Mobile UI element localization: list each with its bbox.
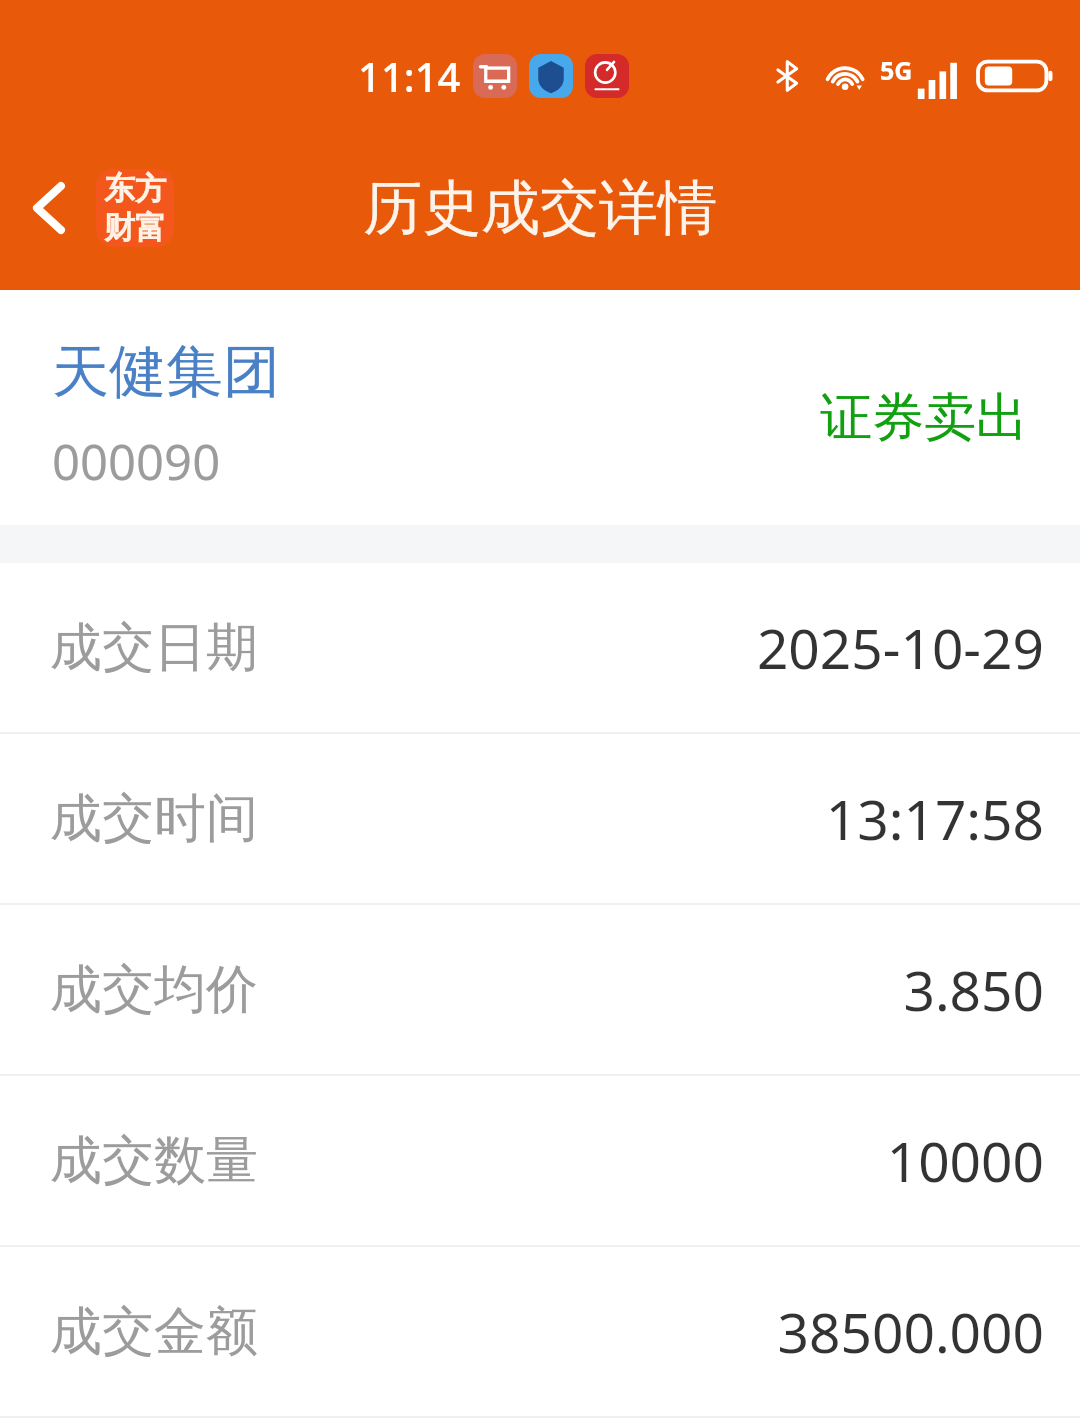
button[interactable]: Back [6, 165, 92, 251]
button[interactable]: 成交时间 [0, 734, 1080, 903]
staticText: 证券卖出 [820, 385, 1028, 451]
staticText: 成交金额 [50, 1299, 258, 1365]
staticText: 历史成交详情 [363, 171, 717, 245]
button[interactable]: 天健集团 [0, 290, 1080, 525]
staticText: 000090 [52, 428, 221, 495]
button[interactable]: 成交金额 [0, 1247, 1080, 1416]
staticText: 东方 [104, 169, 166, 208]
staticText: 天健集团 [52, 336, 280, 408]
staticText: 成交日期 [50, 615, 258, 681]
staticText: 成交数量 [50, 1128, 258, 1194]
staticText: 财富 [104, 208, 166, 247]
button[interactable]: 成交数量 [0, 1076, 1080, 1245]
staticText: 13:17:58 [825, 781, 1044, 856]
staticText: 3.850 [903, 952, 1044, 1027]
staticText: 成交时间 [50, 786, 258, 852]
staticText: 成交均价 [50, 957, 258, 1023]
staticText: 38500.000 [777, 1294, 1044, 1369]
staticText: 11:14 [358, 49, 461, 103]
staticText: 10000 [886, 1123, 1044, 1198]
button[interactable]: 成交均价 [0, 905, 1080, 1074]
staticText: 5G [880, 53, 913, 87]
button[interactable]: 成交日期 [0, 563, 1080, 732]
button[interactable]: East Money [96, 169, 174, 247]
staticText: 2025-10-29 [756, 610, 1044, 685]
